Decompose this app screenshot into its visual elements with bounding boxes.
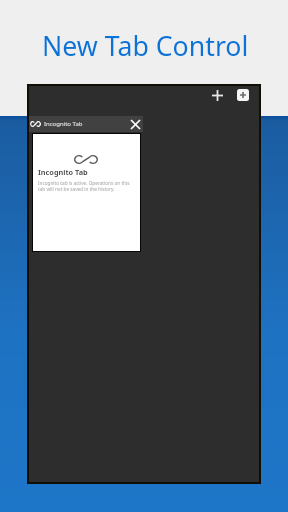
staticText: Incognito tab is active. Operations on t…	[38, 180, 136, 192]
staticText: Incognito Tab	[38, 167, 88, 177]
staticText: Incognito Tab	[44, 120, 83, 128]
staticText: New Tab Control	[42, 27, 249, 63]
button[interactable]: New tab	[207, 86, 227, 104]
button[interactable]: Incognito Tab	[29, 116, 143, 132]
button[interactable]: New incognito tab	[233, 86, 253, 104]
button[interactable]: Close tab	[127, 116, 143, 132]
